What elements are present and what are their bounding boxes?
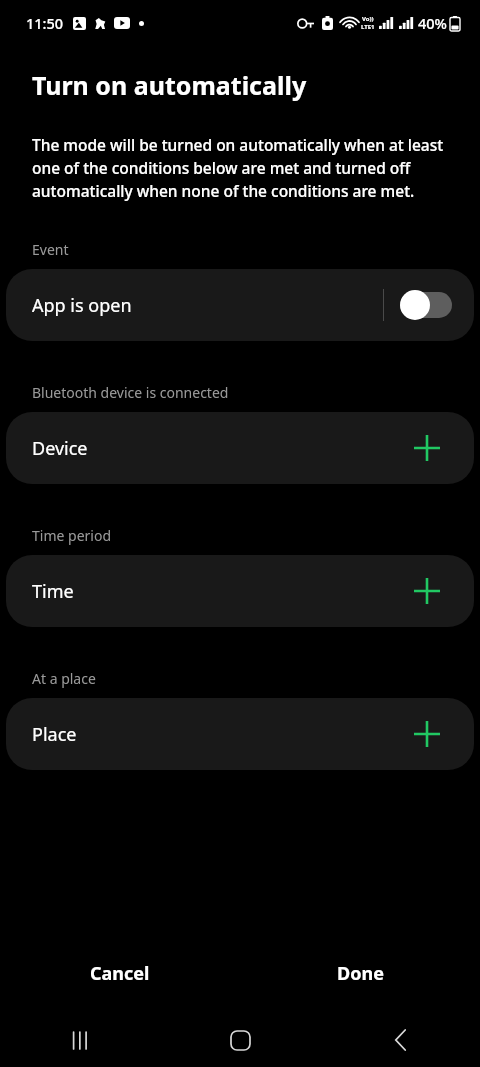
staticText: Done (337, 961, 384, 986)
staticText: 40% (418, 13, 447, 33)
staticText: Time period (32, 526, 112, 545)
button[interactable]: Back (320, 1013, 480, 1067)
staticText: Event (32, 240, 69, 259)
staticText: Time (32, 579, 410, 604)
button[interactable]: Cancel (0, 941, 240, 1005)
button[interactable]: Add time period (410, 574, 444, 608)
button[interactable]: Place (6, 698, 474, 770)
button[interactable]: Device (6, 412, 474, 484)
button[interactable]: Home (160, 1013, 320, 1067)
button[interactable]: Done (240, 941, 480, 1005)
staticText: Turn on automatically (32, 68, 307, 102)
staticText: Bluetooth device is connected (32, 383, 229, 402)
staticText: At a place (32, 669, 96, 688)
button[interactable]: Add place (410, 717, 444, 751)
staticText: Vo)) (362, 15, 374, 23)
staticText: Device (32, 436, 410, 461)
button[interactable]: App is open toggle (400, 290, 452, 320)
staticText: Cancel (90, 961, 150, 986)
staticText: Place (32, 722, 410, 747)
staticText: 11:50 (26, 13, 64, 33)
staticText: LTE1 (361, 23, 375, 31)
button[interactable]: Time (6, 555, 474, 627)
button[interactable]: Add Bluetooth device (410, 431, 444, 465)
button[interactable]: Recents (0, 1013, 160, 1067)
staticText: App is open (32, 293, 383, 318)
staticText: The mode will be turned on automatically… (32, 134, 452, 202)
button[interactable]: App is open (6, 269, 474, 341)
